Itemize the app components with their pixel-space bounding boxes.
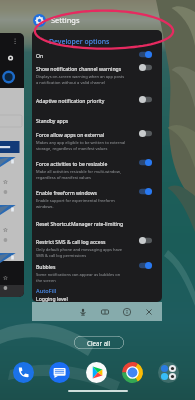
staticText: Bubbles (36, 264, 56, 271)
button[interactable] (0, 33, 24, 297)
staticText: Displays on-screen warning when an app p… (36, 74, 125, 79)
button[interactable]: Settings (33, 13, 80, 27)
button[interactable]: Bubbles (32, 262, 162, 286)
staticText: Reset ShortcutManager rate-limiting (36, 221, 124, 228)
staticText: Settings (51, 15, 80, 25)
staticText: Standby apps (36, 118, 69, 125)
button[interactable]: Adaptive notification priority (32, 96, 162, 107)
button[interactable]: Close (142, 305, 156, 319)
staticText: Clear all (87, 339, 111, 347)
button[interactable]: Enable freeform windows (32, 188, 162, 212)
button[interactable]: Play Store (86, 362, 107, 383)
button[interactable]: Apps folder (158, 362, 179, 383)
button[interactable]: Restrict SMS & call log access (32, 237, 162, 261)
button[interactable]: AutoFill (32, 285, 162, 296)
staticText: AutoFill (36, 287, 57, 295)
button[interactable]: Force allow apps on external (32, 130, 162, 154)
staticText: On (36, 53, 44, 60)
staticText: Makes any app eligible to be written to … (36, 140, 126, 145)
button[interactable]: Messages (49, 362, 70, 383)
button[interactable]: App info (120, 305, 134, 319)
staticText: Some notifications can appear as bubbles… (36, 272, 121, 277)
staticText: a notification without a valid channel (36, 80, 106, 85)
button[interactable]: Reset ShortcutManager rate-limiting (32, 219, 162, 230)
button[interactable]: Standby apps (32, 116, 162, 127)
staticText: Only default phone and messaging apps ha… (36, 247, 123, 252)
button[interactable]: Split screen (98, 305, 112, 319)
staticText: Restrict SMS & call log access (36, 239, 106, 246)
button[interactable]: Show notification channel warnings (32, 64, 162, 88)
staticText: Show notification channel warnings (36, 66, 122, 73)
button[interactable]: Chrome (122, 362, 143, 383)
button[interactable]: On (32, 51, 162, 62)
button[interactable]: Phone (13, 362, 34, 383)
staticText: Force allow apps on external (36, 132, 105, 139)
staticText: Developer options (49, 37, 110, 46)
staticText: the screen (36, 278, 56, 283)
button[interactable]: Clear all (74, 336, 124, 349)
staticText: Enable freeform windows (36, 190, 98, 197)
staticText: Logging level (36, 296, 68, 302)
staticText: windows. (36, 204, 54, 209)
button[interactable]: Developer options (32, 35, 162, 46)
staticText: Make all activities resizable for multi-… (36, 169, 121, 174)
staticText: Enable support for experimental freeform (36, 198, 115, 203)
staticText: SMS & call log permissions (36, 253, 87, 258)
staticText: storage, regardless of manifest values (36, 146, 108, 151)
staticText: Adaptive notification priority (36, 98, 105, 105)
button[interactable]: Logging level (32, 294, 162, 302)
button[interactable]: Force activities to be resizable (32, 159, 162, 183)
staticText: regardless of manifest values (36, 175, 92, 180)
button[interactable]: Screenshot (76, 305, 90, 319)
staticText: Force activities to be resizable (36, 161, 108, 168)
